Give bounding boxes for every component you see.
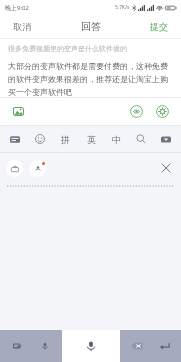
button[interactable]: Collapse keyboard xyxy=(156,129,176,149)
staticText: 提交 xyxy=(150,21,168,32)
staticText: 晚上9:02 xyxy=(5,4,29,12)
button[interactable]: Shop xyxy=(6,160,23,177)
staticText: 回答 xyxy=(81,20,101,33)
staticText: 大部分的变声软件都是需要付费的，这种免费的软件变声效果很差的，推荐还是让淘宝上购… xyxy=(8,61,173,97)
button[interactable]: Emoji xyxy=(30,129,50,149)
staticText: 5.7K/s xyxy=(115,4,130,11)
button[interactable]: Backspace xyxy=(126,335,148,357)
button[interactable]: Search xyxy=(131,129,151,149)
button[interactable]: Close xyxy=(157,159,175,177)
button[interactable]: 拼 xyxy=(55,129,75,149)
button[interactable]: 英 xyxy=(81,129,101,149)
button[interactable]: 中 xyxy=(106,129,126,149)
button[interactable]: 取消 xyxy=(0,15,44,38)
button[interactable]: Microphone xyxy=(62,330,120,362)
button[interactable]: Enter xyxy=(153,335,175,357)
staticText: 很多免费视频里的变声是什么软件做的 xyxy=(8,44,127,53)
staticText: 中 xyxy=(112,134,121,145)
button[interactable]: Preview xyxy=(127,102,146,121)
staticText: 取消 xyxy=(13,21,31,32)
button[interactable]: Settings xyxy=(153,102,172,121)
button[interactable]: Stickers xyxy=(29,160,46,177)
button[interactable]: Insert image xyxy=(9,102,28,121)
button[interactable]: Symbols xyxy=(7,336,27,356)
staticText: 拼 xyxy=(61,134,70,145)
staticText: 英 xyxy=(87,134,96,145)
button[interactable]: Keyboard layout xyxy=(5,129,25,149)
button[interactable]: Voice xyxy=(35,336,55,356)
button[interactable]: 提交 xyxy=(137,15,181,38)
